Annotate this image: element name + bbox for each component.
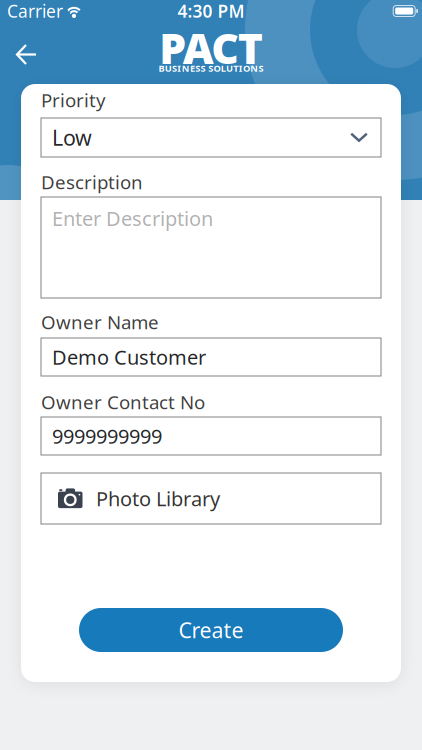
staticText: Enter Description <box>52 205 213 232</box>
staticText: Owner Contact No <box>41 390 205 414</box>
button[interactable]: Demo Customer <box>41 338 381 376</box>
staticText: Description <box>41 170 143 194</box>
button[interactable]: Create <box>79 608 343 652</box>
staticText: 4:30 PM <box>177 0 244 22</box>
staticText: Owner Name <box>41 310 159 334</box>
staticText: BUSINESS SOLUTIONS <box>158 62 264 74</box>
staticText: Photo Library <box>96 485 220 512</box>
button[interactable]: 9999999999 <box>41 417 381 455</box>
staticText: Demo Customer <box>52 344 206 370</box>
staticText: Carrier <box>7 0 63 22</box>
button[interactable]: Low <box>41 118 381 157</box>
staticText: 9999999999 <box>52 423 162 449</box>
staticText: Low <box>52 123 92 152</box>
staticText: Create <box>178 616 243 644</box>
button[interactable]: Photo Library <box>41 473 381 524</box>
staticText: PACT <box>159 19 263 76</box>
button[interactable]: Back <box>0 22 49 73</box>
staticText: Priority <box>41 88 106 112</box>
button[interactable]: Description <box>41 197 381 298</box>
